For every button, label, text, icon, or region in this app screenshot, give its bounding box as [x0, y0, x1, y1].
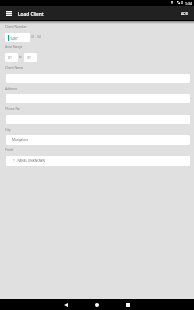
button[interactable]: Open navigation menu: [2, 6, 16, 20]
staticText: 01 - 04: [31, 35, 41, 39]
staticText: City: [5, 128, 11, 132]
staticText: Phone No: [5, 107, 20, 111]
button[interactable]: 3487: [5, 33, 30, 42]
staticText: Mangalore: [12, 138, 29, 142]
button[interactable]: 01: [5, 53, 18, 62]
staticText: Area Range: [5, 45, 23, 49]
staticText: Panel: [5, 148, 14, 152]
staticText: 31: [27, 55, 31, 60]
staticText: Client Number: [5, 25, 27, 29]
staticText: Load Client: [18, 11, 44, 18]
staticText: 1:34: [185, 1, 192, 6]
button[interactable]: 31: [24, 53, 37, 62]
staticText: Client Name: [5, 66, 24, 70]
staticText: 01: [8, 55, 12, 60]
button[interactable]: 1 - PANEL UNKNOWN: [6, 156, 190, 166]
button[interactable]: Mangalore: [6, 135, 190, 145]
button[interactable]: Recent apps: [120, 299, 136, 310]
staticText: to: [19, 55, 22, 59]
staticText: 1 - PANEL UNKNOWN: [13, 159, 45, 163]
staticText: ADD: [181, 11, 189, 16]
staticText: 3487: [10, 36, 18, 41]
button[interactable]: ADD: [176, 8, 194, 19]
button[interactable]: Back: [58, 299, 74, 310]
staticText: Address: [5, 87, 18, 91]
button[interactable]: Home: [89, 299, 105, 310]
